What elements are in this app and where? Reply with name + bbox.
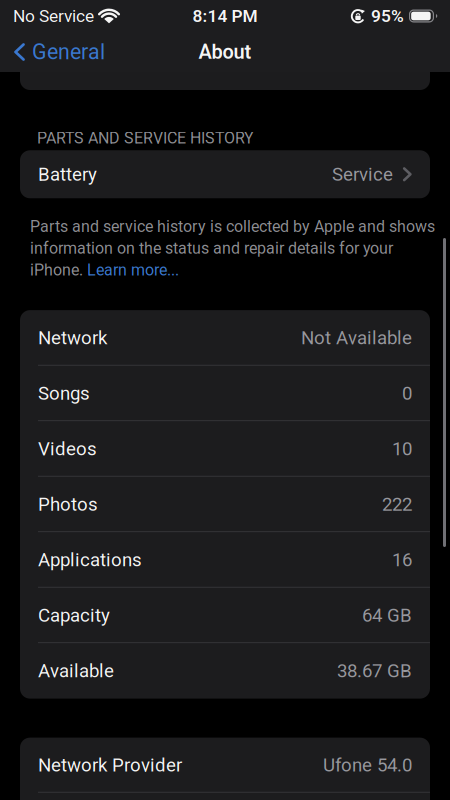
button[interactable]: Learn more... bbox=[87, 261, 179, 279]
staticText: Photos bbox=[38, 494, 98, 515]
staticText: Learn more... bbox=[87, 261, 179, 279]
staticText: General bbox=[32, 40, 105, 64]
staticText: information on the status and repair det… bbox=[30, 239, 393, 257]
staticText: Applications bbox=[38, 549, 142, 570]
button[interactable]: Back to General bbox=[0, 40, 105, 64]
staticText: Ufone 54.0 bbox=[323, 754, 412, 776]
staticText: Parts and service history is collected b… bbox=[30, 217, 435, 236]
staticText: Not Available bbox=[301, 327, 412, 348]
staticText: iPhone. bbox=[30, 261, 83, 279]
staticText: 64 GB bbox=[362, 605, 412, 626]
staticText: No Service bbox=[13, 6, 94, 26]
staticText: 10 bbox=[392, 438, 412, 459]
staticText: Network bbox=[38, 327, 107, 348]
staticText: 38.67 GB bbox=[337, 660, 412, 681]
staticText: 0 bbox=[402, 383, 412, 404]
staticText: Videos bbox=[38, 438, 97, 459]
staticText: 95% bbox=[371, 6, 404, 26]
button[interactable]: Battery bbox=[20, 150, 430, 198]
staticText: Network Provider bbox=[38, 754, 182, 776]
staticText: 8:14 PM bbox=[192, 6, 257, 26]
staticText: 222 bbox=[382, 494, 412, 515]
staticText: 16 bbox=[392, 549, 412, 570]
staticText: Songs bbox=[38, 383, 90, 404]
staticText: Available bbox=[38, 660, 114, 681]
staticText: Service bbox=[332, 164, 393, 185]
staticText: Capacity bbox=[38, 605, 110, 626]
staticText: PARTS AND SERVICE HISTORY bbox=[37, 129, 254, 147]
staticText: Battery bbox=[38, 164, 97, 185]
staticText: About bbox=[198, 41, 251, 63]
